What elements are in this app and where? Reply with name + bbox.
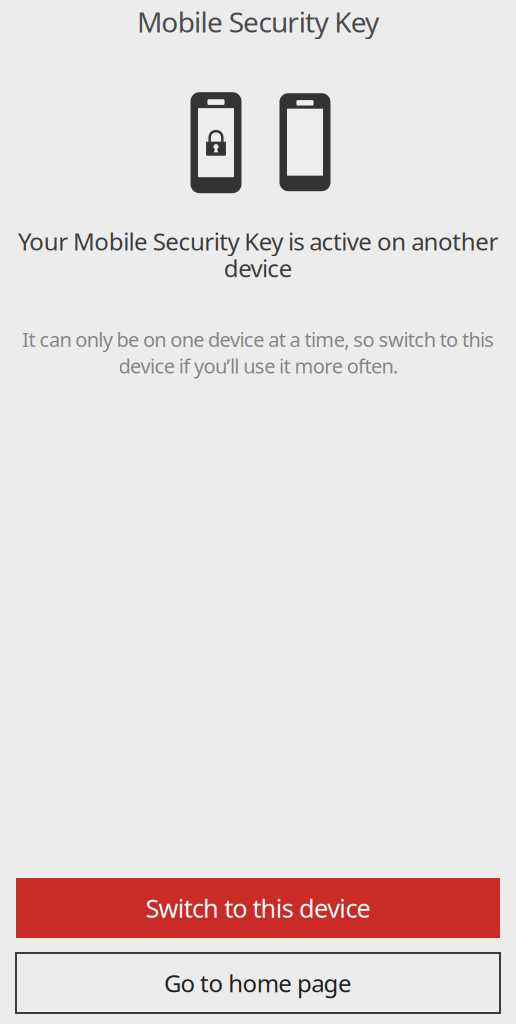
staticText: Go to home page (164, 967, 352, 999)
staticText: Switch to this device (145, 891, 370, 925)
staticText: Mobile Security Key (137, 3, 379, 40)
staticText: Your Mobile Security Key is active on an… (18, 225, 498, 284)
button[interactable]: Go to home page (16, 953, 500, 1013)
staticText: It can only be on one device at a time, … (22, 326, 494, 379)
button[interactable]: Switch to this device (16, 878, 500, 938)
